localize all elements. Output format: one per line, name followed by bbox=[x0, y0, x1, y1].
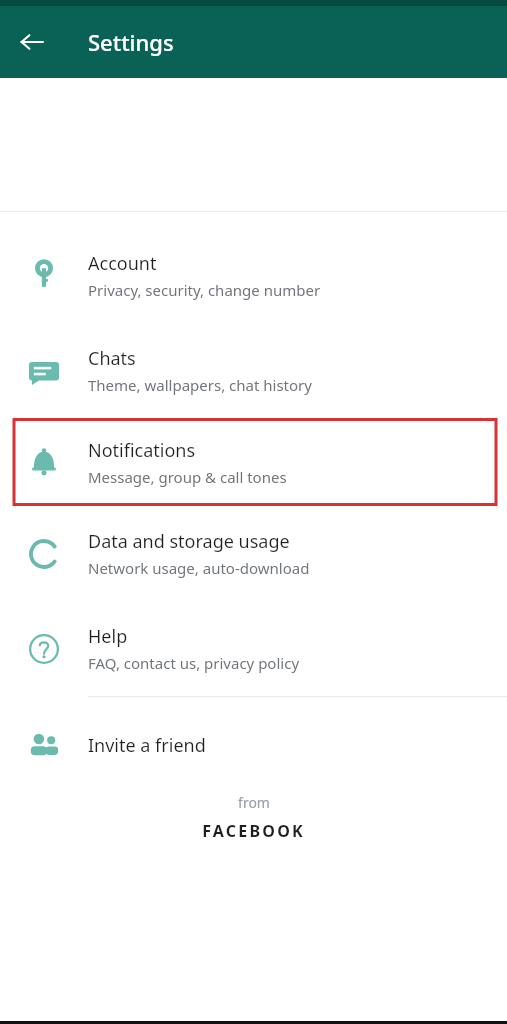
staticText: Chats bbox=[88, 346, 136, 371]
staticText: FAQ, contact us, privacy policy bbox=[88, 653, 300, 673]
staticText: Invite a friend bbox=[88, 733, 206, 758]
staticText: Notifications bbox=[88, 438, 196, 463]
button[interactable]: Data and storage usage bbox=[0, 506, 507, 601]
staticText: Help bbox=[88, 624, 128, 649]
button[interactable]: Chats bbox=[0, 323, 507, 418]
staticText: Theme, wallpapers, chat history bbox=[88, 375, 312, 395]
staticText: from bbox=[238, 793, 270, 812]
button[interactable]: Invite a friend bbox=[0, 697, 507, 793]
button[interactable]: Back bbox=[8, 18, 56, 66]
staticText: Privacy, security, change number bbox=[88, 280, 321, 300]
staticText: Network usage, auto-download bbox=[88, 558, 310, 578]
staticText: Data and storage usage bbox=[88, 529, 290, 554]
button[interactable]: Notifications bbox=[0, 418, 507, 506]
staticText: Message, group & call tones bbox=[88, 467, 287, 487]
button[interactable]: Help bbox=[0, 601, 507, 696]
button[interactable]: Account bbox=[0, 228, 507, 323]
staticText: Account bbox=[88, 251, 157, 276]
staticText: Settings bbox=[88, 27, 174, 57]
staticText: FACEBOOK bbox=[202, 820, 305, 842]
